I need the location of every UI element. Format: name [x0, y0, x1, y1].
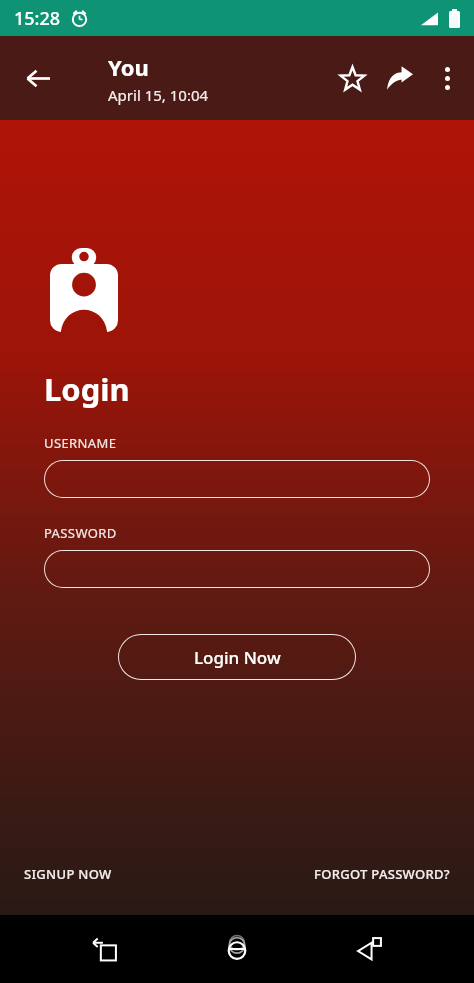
staticText: Login Now: [194, 646, 281, 669]
staticText: 15:28: [14, 6, 61, 31]
button[interactable]: More options: [424, 55, 470, 101]
staticText: Login: [44, 368, 130, 410]
button[interactable]: FORGOT PASSWORD?: [312, 857, 452, 891]
button[interactable]: Home: [209, 921, 265, 977]
button[interactable]: Login Now: [118, 634, 356, 680]
staticText: PASSWORD: [44, 524, 117, 542]
button[interactable]: Back: [342, 921, 398, 977]
button[interactable]: Share: [376, 54, 424, 102]
staticText: You: [108, 52, 149, 82]
button[interactable]: Username field: [44, 460, 430, 498]
staticText: April 15, 10:04: [108, 85, 209, 105]
button[interactable]: Password field: [44, 550, 430, 588]
staticText: SIGNUP NOW: [24, 865, 112, 883]
button[interactable]: Favorite: [328, 54, 376, 102]
button[interactable]: SIGNUP NOW: [22, 857, 114, 891]
button[interactable]: Back: [12, 52, 64, 104]
staticText: FORGOT PASSWORD?: [314, 865, 450, 883]
staticText: USERNAME: [44, 434, 117, 452]
button[interactable]: Recent apps: [77, 921, 133, 977]
